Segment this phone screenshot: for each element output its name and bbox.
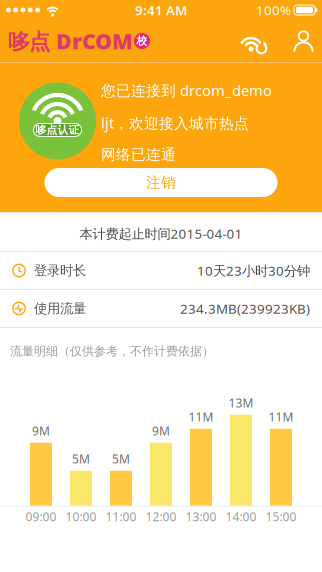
staticText: 13M	[228, 395, 253, 411]
staticText: 9:41 AM	[135, 1, 187, 19]
staticText: 11M	[268, 409, 293, 425]
staticText: 流量明细（仅供参考，不作计费依据）	[10, 344, 214, 359]
staticText: 您已连接到 drcom_demo	[101, 80, 272, 100]
staticText: 使用流量	[34, 300, 86, 317]
staticText: 9M	[152, 423, 170, 439]
staticText: 5M	[72, 451, 90, 467]
staticText: 本计费起止时间2015-04-01	[79, 225, 242, 242]
staticText: 10天23小时30分钟	[197, 262, 310, 279]
button[interactable]: 刷新网络	[240, 28, 268, 54]
staticText: 注销	[146, 173, 176, 191]
staticText: 13:00	[185, 509, 216, 525]
staticText: 12:00	[145, 509, 176, 525]
staticText: 11M	[188, 409, 213, 425]
staticText: 234.3MB(239923KB)	[180, 300, 310, 317]
staticText: 登录时长	[34, 262, 86, 279]
button[interactable]: 账户	[268, 30, 322, 52]
staticText: 哆点 DrCOM	[8, 27, 133, 55]
staticText: 哆点认证	[35, 123, 79, 136]
button[interactable]: 注销	[44, 168, 277, 197]
staticText: 10:00	[65, 509, 96, 525]
staticText: 09:00	[25, 509, 56, 525]
staticText: 11:00	[105, 509, 136, 525]
staticText: 15:00	[265, 509, 296, 525]
staticText: 网络已连通	[101, 145, 176, 163]
staticText: ljt，欢迎接入城市热点	[101, 113, 249, 133]
staticText: 9M	[32, 423, 50, 439]
staticText: 校	[136, 34, 147, 47]
staticText: 5M	[112, 451, 130, 467]
staticText: 100%	[256, 1, 291, 19]
staticText: 14:00	[225, 509, 256, 525]
